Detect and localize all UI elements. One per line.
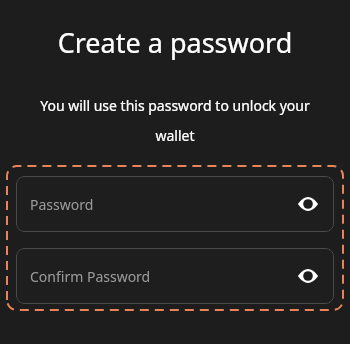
button[interactable]: Password: [16, 176, 334, 232]
staticText: You will use this password to unlock you…: [26, 96, 324, 145]
staticText: Create a password: [0, 24, 350, 61]
staticText: Password: [30, 195, 94, 214]
staticText: Confirm Password: [30, 267, 151, 286]
button[interactable]: Show password: [290, 186, 326, 222]
button[interactable]: Show password: [290, 258, 326, 294]
button[interactable]: Confirm Password: [16, 248, 334, 304]
